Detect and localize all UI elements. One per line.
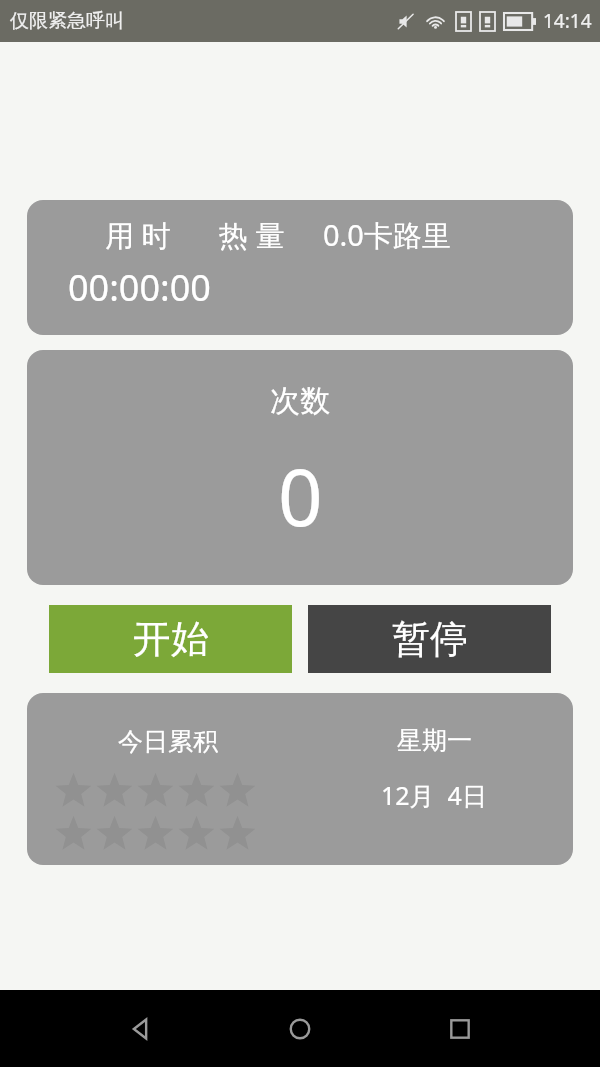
- staticText: 次数: [270, 382, 330, 420]
- button[interactable]: 次数: [27, 350, 573, 585]
- staticText: 仅限紧急呼叫: [10, 9, 124, 33]
- button[interactable]: Recent apps: [380, 990, 540, 1067]
- staticText: 00:00:00: [68, 263, 211, 312]
- staticText: 暂停: [392, 615, 468, 663]
- staticText: 用 时: [105, 215, 171, 255]
- button[interactable]: 暂停: [308, 605, 551, 673]
- staticText: 热 量: [219, 215, 285, 255]
- staticText: 开始: [133, 615, 209, 663]
- staticText: 0.0卡路里: [323, 215, 451, 255]
- button[interactable]: 用 时: [27, 200, 573, 335]
- button[interactable]: Home: [220, 990, 380, 1067]
- staticText: 星期一: [397, 725, 472, 756]
- button[interactable]: Back: [60, 990, 220, 1067]
- staticText: 今日累积: [118, 726, 218, 757]
- staticText: 0: [278, 443, 323, 549]
- button[interactable]: 开始: [49, 605, 292, 673]
- button[interactable]: 今日累积: [27, 693, 573, 865]
- staticText: 14:14: [543, 8, 592, 34]
- staticText: 12月 4日: [381, 778, 487, 812]
